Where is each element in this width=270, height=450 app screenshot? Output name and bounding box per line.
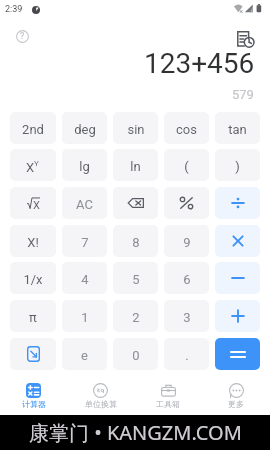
staticText: 3 (183, 310, 191, 325)
staticText: 单位换算 (85, 399, 117, 409)
button[interactable]: Backspace (113, 187, 158, 219)
button[interactable]: π (10, 300, 56, 332)
staticText: sin (127, 122, 145, 137)
button[interactable] (164, 187, 209, 219)
button[interactable]: Hide keyboard (10, 338, 56, 370)
staticText: 康掌门 • KANGZM.COM (29, 419, 242, 446)
button[interactable]: deg (62, 112, 107, 144)
staticText: π (29, 310, 37, 325)
staticText: 6 (183, 272, 191, 287)
button[interactable] (215, 187, 260, 219)
button[interactable]: History (231, 25, 255, 49)
staticText: ) (235, 159, 240, 174)
staticText: 7 (81, 235, 89, 250)
staticText: 2nd (22, 122, 44, 137)
button[interactable] (215, 300, 260, 332)
staticText: 123+456 (144, 47, 255, 80)
staticText: deg (74, 122, 96, 137)
staticText: 8 (132, 235, 140, 250)
staticText: 计算器 (22, 399, 46, 409)
button[interactable]: Help (14, 28, 31, 45)
staticText: . (185, 348, 189, 363)
staticText: ( (184, 159, 189, 174)
staticText: X (33, 199, 40, 211)
button[interactable]: 2 (113, 300, 158, 332)
button[interactable] (215, 338, 260, 370)
staticText: 579 (232, 87, 254, 102)
staticText: 9 (183, 235, 191, 250)
button[interactable]: X (10, 187, 56, 219)
button[interactable]: 1 (62, 300, 107, 332)
button[interactable]: sin (113, 112, 158, 144)
button[interactable]: cos (164, 112, 209, 144)
button[interactable]: tan (215, 112, 260, 144)
staticText: 5 (132, 272, 140, 287)
button[interactable]: 工具箱 (134, 375, 202, 410)
button[interactable]: 3 (164, 300, 209, 332)
button[interactable]: ( (164, 149, 209, 181)
staticText: ln (130, 159, 141, 174)
staticText: cos (176, 122, 197, 137)
staticText: 2 (132, 310, 140, 325)
staticText: 工具箱 (156, 399, 180, 409)
button[interactable]: 1/x (10, 262, 56, 294)
button[interactable]: AC (62, 187, 107, 219)
staticText: 0 (132, 348, 140, 363)
button[interactable]: 4 (62, 262, 107, 294)
button[interactable]: 8 (113, 225, 158, 257)
staticText: 1 (81, 310, 89, 325)
staticText: X (26, 160, 35, 175)
button[interactable] (215, 262, 260, 294)
button[interactable]: 6 (164, 262, 209, 294)
button[interactable]: X (10, 149, 56, 181)
button[interactable]: 0 (113, 338, 158, 370)
button[interactable]: ) (215, 149, 260, 181)
staticText: 2:39 (5, 4, 23, 15)
button[interactable]: 7 (62, 225, 107, 257)
staticText: e (81, 348, 88, 363)
staticText: AC (76, 197, 93, 212)
staticText: Y (34, 159, 39, 168)
staticText: 4 (81, 272, 89, 287)
staticText: ? (20, 31, 25, 42)
button[interactable]: ln (113, 149, 158, 181)
button[interactable]: 更多 (202, 375, 270, 410)
button[interactable]: 单位换算 (67, 375, 134, 410)
button[interactable] (215, 225, 260, 257)
button[interactable]: 计算器 (0, 375, 67, 410)
staticText: X! (27, 235, 39, 250)
staticText: 更多 (228, 399, 244, 409)
button[interactable]: 9 (164, 225, 209, 257)
staticText: lg (79, 159, 90, 174)
staticText: 1/x (23, 272, 43, 287)
staticText: tan (228, 122, 247, 137)
button[interactable]: 2nd (10, 112, 56, 144)
button[interactable]: e (62, 338, 107, 370)
button[interactable]: 5 (113, 262, 158, 294)
button[interactable]: lg (62, 149, 107, 181)
button[interactable]: X! (10, 225, 56, 257)
